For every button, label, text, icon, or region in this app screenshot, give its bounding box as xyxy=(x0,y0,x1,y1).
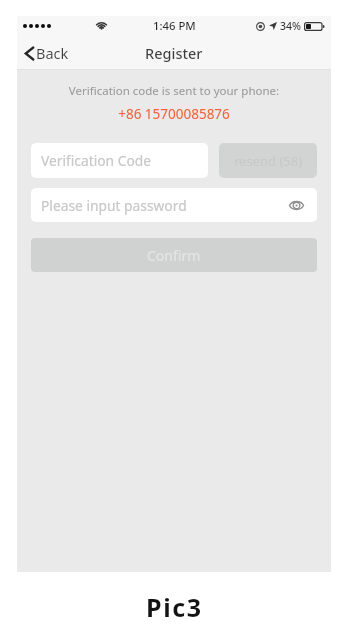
staticText: resend (58) xyxy=(234,152,303,170)
staticText: Register xyxy=(145,43,203,63)
staticText: +86 15700085876 xyxy=(31,105,317,123)
staticText: 34% xyxy=(280,19,301,33)
staticText: Verification Code xyxy=(41,151,152,170)
staticText: Pic3 xyxy=(146,590,203,624)
button[interactable]: Please input password xyxy=(31,188,317,222)
button[interactable]: Show password xyxy=(285,194,307,216)
staticText: Verification code is sent to your phone: xyxy=(31,83,317,99)
staticText: Confirm xyxy=(147,246,201,265)
staticText: Back xyxy=(36,43,69,63)
staticText: 1:46 PM xyxy=(153,18,196,33)
button[interactable]: Back xyxy=(17,38,79,68)
staticText: Please input password xyxy=(41,196,187,215)
button[interactable]: Verification Code xyxy=(31,143,208,178)
